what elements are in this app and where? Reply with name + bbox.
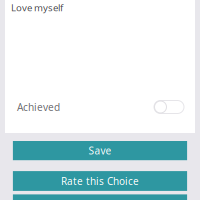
button[interactable]: Rate this Choice [13, 171, 187, 191]
button[interactable]: Delete [13, 194, 187, 200]
button[interactable]: Save [13, 141, 187, 160]
staticText: Achieved [17, 100, 60, 114]
staticText: Rate this Choice [61, 174, 139, 188]
staticText: Save [88, 144, 111, 157]
staticText: Love myself [11, 1, 63, 14]
